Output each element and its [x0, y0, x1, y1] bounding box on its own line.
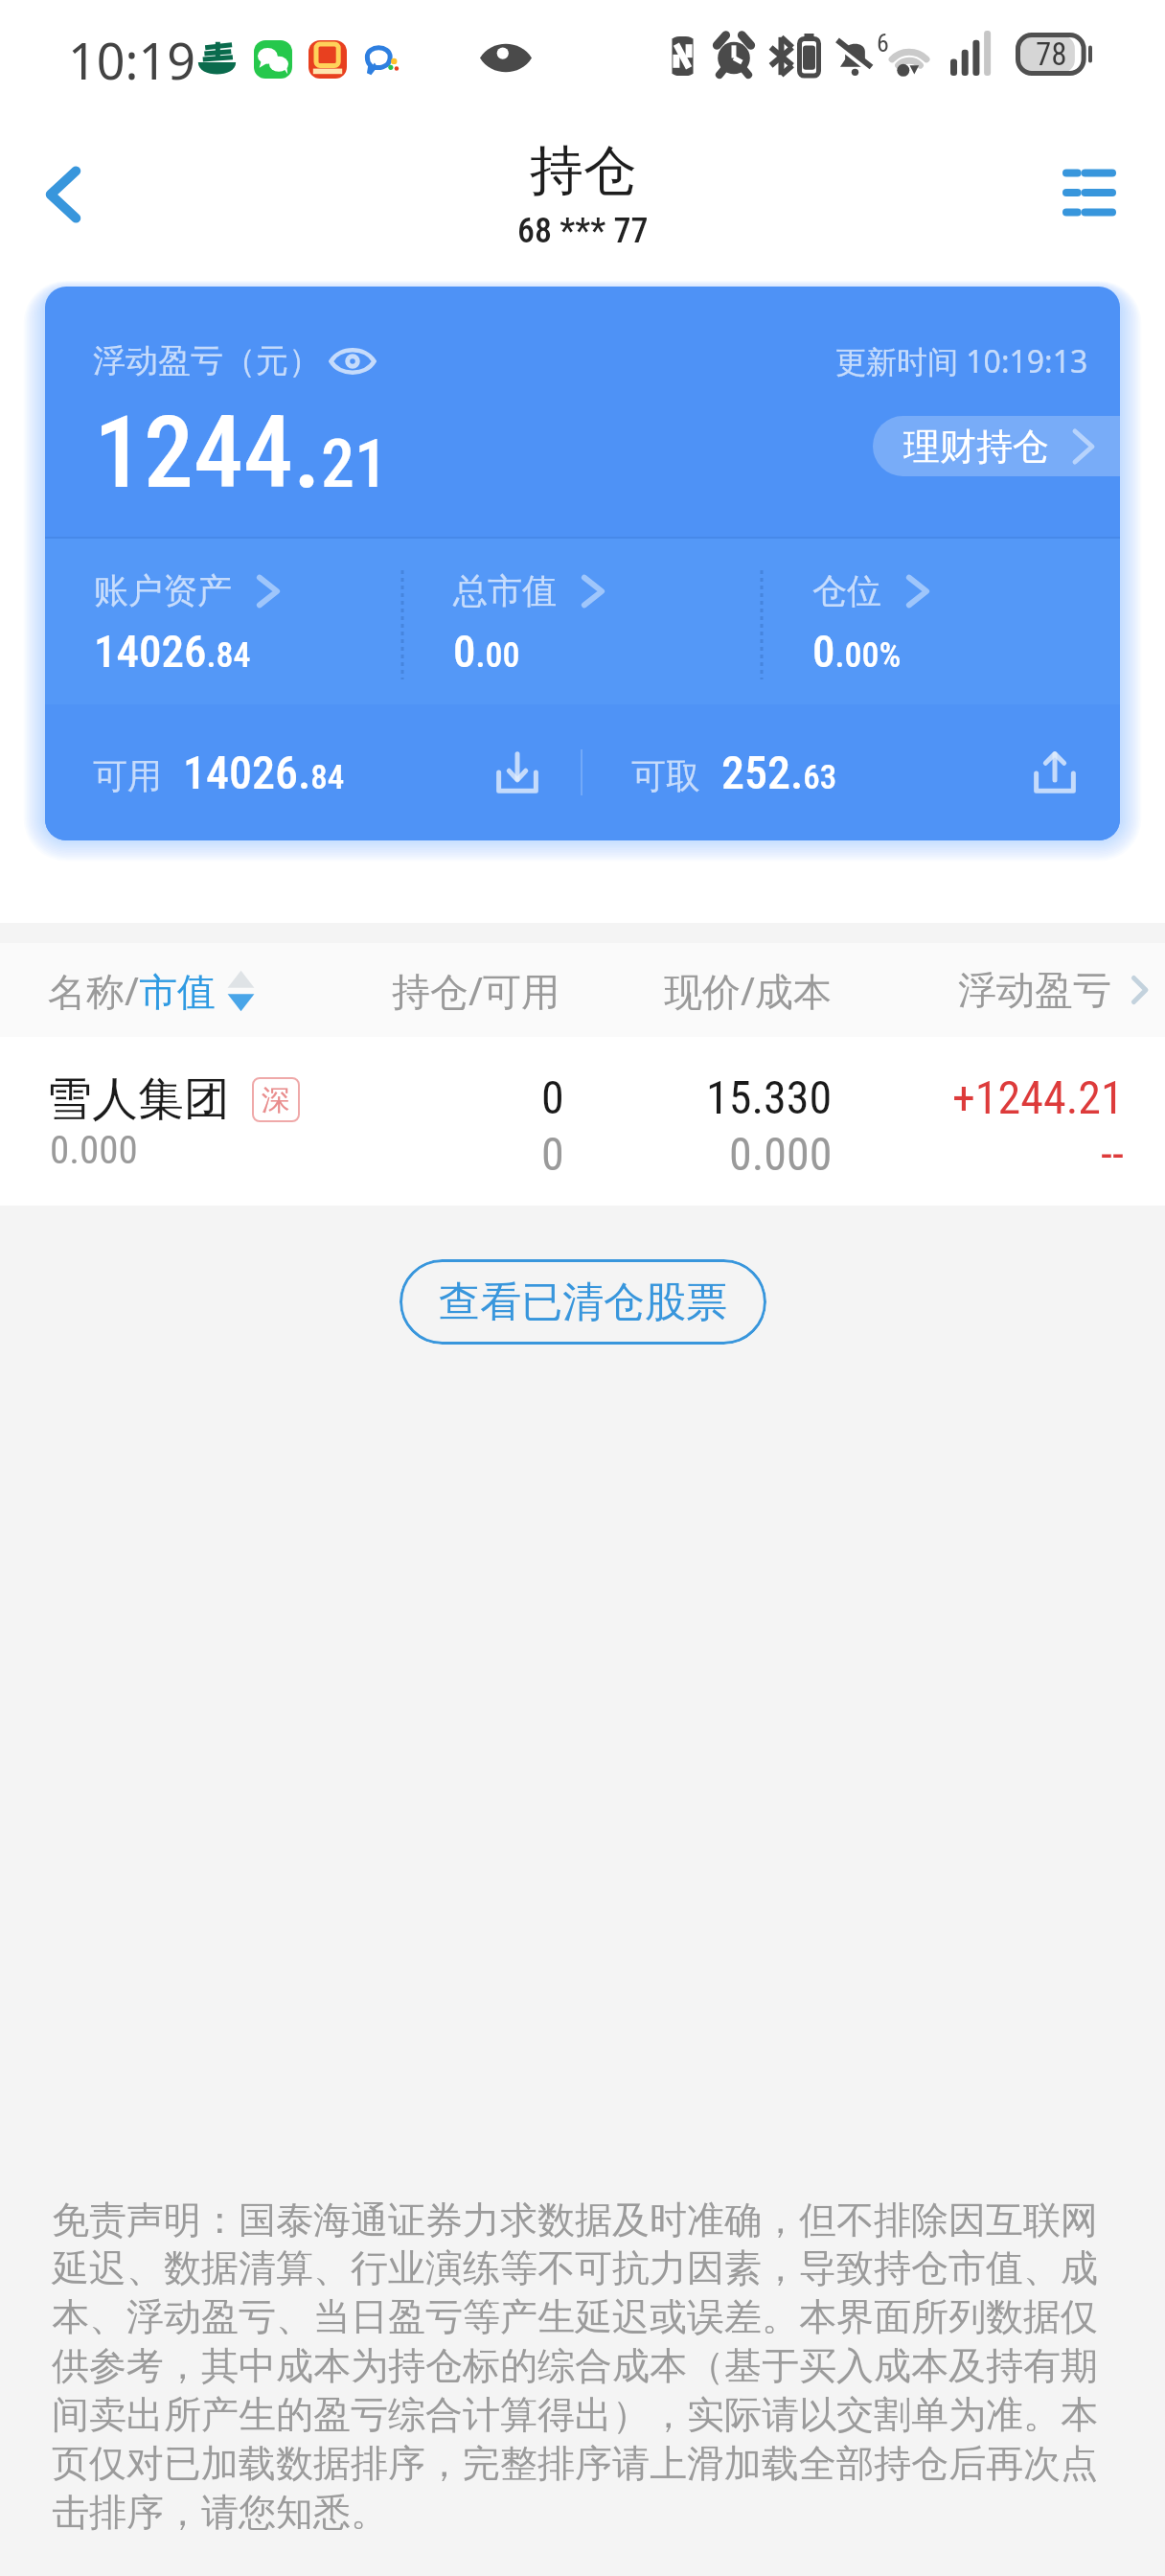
button[interactable]: List options	[1062, 169, 1116, 217]
staticText: 68 *** 77	[517, 211, 649, 251]
staticText: 0.000	[729, 1127, 833, 1181]
staticText: 14026.84	[183, 746, 345, 799]
button[interactable]: 浮动盈亏	[958, 966, 1149, 1014]
staticText: 10:19	[68, 26, 195, 94]
staticText: 深	[262, 1082, 290, 1118]
staticText: 1244.21	[94, 395, 388, 512]
staticText: 浮动盈亏	[958, 966, 1111, 1014]
staticText: 252.63	[721, 746, 837, 799]
staticText: 0	[541, 1127, 564, 1181]
staticText: 0	[541, 1070, 564, 1124]
staticText: 更新时间 10:19:13	[835, 340, 1088, 382]
staticText: 持仓	[530, 137, 637, 205]
button[interactable]: 名称/市值	[48, 964, 255, 1017]
staticText: 0.00%	[812, 625, 902, 678]
button[interactable]: 理财持仓	[873, 416, 1120, 476]
staticText: 0.00	[453, 625, 520, 678]
staticText: 查看已清仓股票	[439, 1276, 727, 1328]
staticText: 总市值	[453, 569, 557, 612]
button[interactable]: Deposit	[496, 751, 538, 793]
staticText: 账户资产	[94, 569, 232, 612]
button[interactable]: Back	[26, 157, 101, 232]
button[interactable]: Withdraw	[1034, 751, 1076, 793]
staticText: 14026.84	[94, 625, 251, 678]
staticText: 可用	[93, 754, 162, 797]
staticText: 理财持仓	[903, 424, 1049, 470]
staticText: 可取	[631, 754, 700, 797]
staticText: 名称/市值	[48, 964, 216, 1017]
staticText: 现价/成本	[664, 964, 832, 1017]
staticText: 持仓/可用	[392, 964, 560, 1017]
staticText: --	[1101, 1127, 1124, 1181]
staticText: 15.330	[706, 1070, 833, 1124]
staticText: 6	[877, 29, 889, 57]
button[interactable]: 查看已清仓股票	[400, 1259, 766, 1345]
staticText: +1244.21	[952, 1070, 1124, 1124]
staticText: 雪人集团	[46, 1070, 230, 1128]
staticText: 免责声明：国泰海通证券力求数据及时准确，但不排除因互联网延迟、数据清算、行业演练…	[52, 2196, 1098, 2536]
button[interactable]: 雪人集团	[0, 1037, 1165, 1206]
staticText: 78	[1036, 35, 1067, 73]
staticText: 仓位	[812, 569, 881, 612]
staticText: 0.000	[50, 1127, 138, 1173]
staticText: 浮动盈亏（元）	[93, 340, 321, 381]
